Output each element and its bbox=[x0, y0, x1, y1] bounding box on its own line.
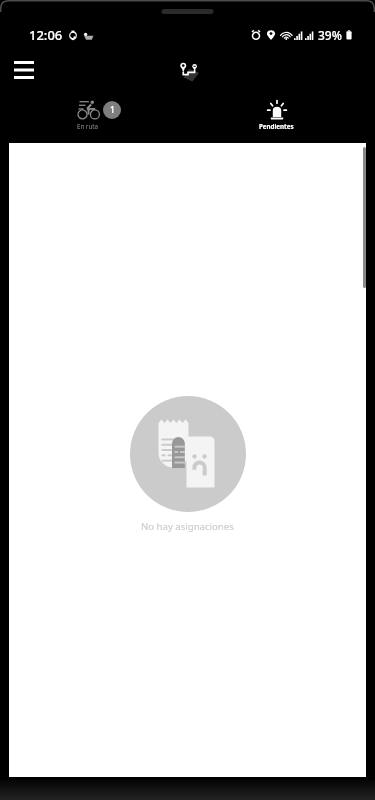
staticText: 39% bbox=[318, 27, 342, 43]
staticText: Pendientes bbox=[259, 122, 294, 130]
staticText: No hay asignaciones bbox=[141, 520, 234, 533]
staticText: 12:06 bbox=[29, 26, 63, 44]
staticText: En ruta bbox=[77, 122, 98, 130]
button[interactable]: Pendientes bbox=[187, 89, 366, 140]
button[interactable]: 1 bbox=[9, 89, 187, 140]
button[interactable]: Open navigation menu bbox=[4, 50, 44, 90]
staticText: 1 bbox=[110, 104, 115, 116]
